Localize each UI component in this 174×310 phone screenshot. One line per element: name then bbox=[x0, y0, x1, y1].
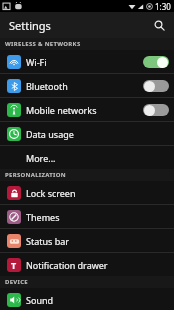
staticText: Sound bbox=[26, 294, 169, 306]
staticText: WIRELESS & NETWORKS bbox=[5, 40, 81, 48]
staticText: Notification drawer bbox=[26, 259, 169, 271]
button[interactable]: More... bbox=[0, 146, 174, 169]
button[interactable]: Bluetooth bbox=[0, 74, 174, 97]
staticText: Lock screen bbox=[26, 187, 169, 199]
button[interactable]: Lock screen bbox=[0, 181, 174, 204]
button[interactable]: Status bar bbox=[0, 229, 174, 252]
button[interactable]: Mobile networks bbox=[0, 98, 174, 121]
staticText: DEVICE bbox=[5, 278, 28, 286]
staticText: Mobile networks bbox=[26, 104, 143, 116]
button[interactable]: Search bbox=[150, 16, 168, 34]
button[interactable]: Data usage bbox=[0, 122, 174, 145]
staticText: 1:30 bbox=[155, 1, 171, 12]
staticText: PERSONALIZATION bbox=[5, 171, 66, 179]
button[interactable]: T bbox=[0, 253, 174, 276]
staticText: T bbox=[11, 259, 17, 271]
staticText: Bluetooth bbox=[26, 80, 143, 92]
staticText: Settings bbox=[9, 18, 51, 33]
button[interactable]: Wi-Fi bbox=[0, 50, 174, 73]
staticText: Wi-Fi bbox=[26, 56, 143, 68]
button[interactable]: Themes bbox=[0, 205, 174, 228]
button[interactable]: Sound bbox=[0, 288, 174, 310]
staticText: Data usage bbox=[26, 128, 169, 140]
staticText: Status bar bbox=[26, 235, 169, 247]
staticText: Themes bbox=[26, 211, 169, 223]
staticText: More... bbox=[26, 152, 169, 164]
